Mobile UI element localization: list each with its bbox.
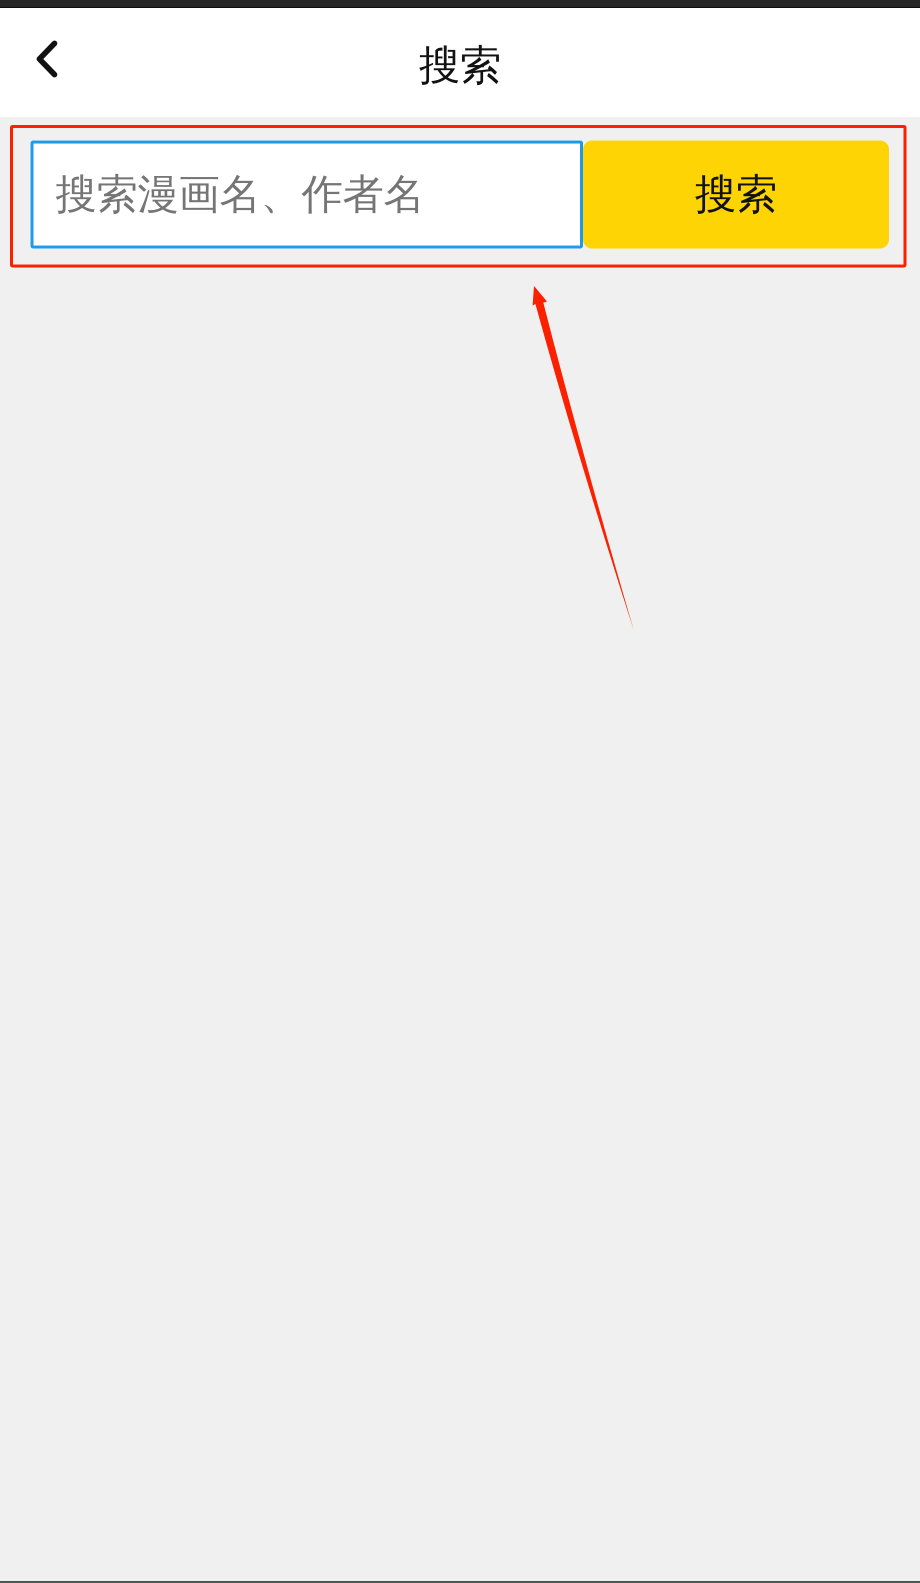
button[interactable]: Back [0,8,94,117]
staticText: 搜索 [695,169,777,220]
button[interactable]: 搜索 [583,140,889,248]
button[interactable]: 搜索漫画名、作者名 [30,140,583,248]
staticText: 搜索 [419,40,501,91]
staticText: 搜索漫画名、作者名 [55,169,424,220]
